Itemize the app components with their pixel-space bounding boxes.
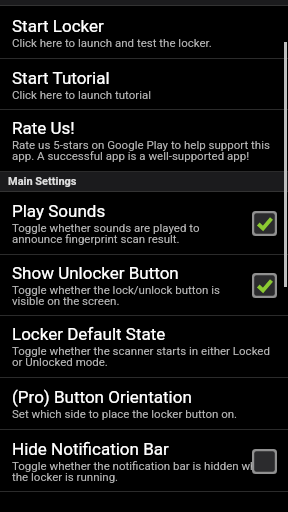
other: Toggle	[252, 211, 277, 236]
button[interactable]: (Pro) Button Orientation	[0, 378, 288, 430]
staticText: (Pro) Button Orientation	[12, 387, 192, 407]
button[interactable]: Hide Notification Bar	[0, 430, 288, 492]
staticText: Toggle whether the scanner starts in eit…	[12, 344, 270, 369]
other: Toggle	[252, 449, 277, 474]
button[interactable]: Play Sounds	[0, 192, 288, 255]
staticText: Toggle whether sounds are played to anno…	[12, 221, 200, 246]
staticText: Hide Notification Bar	[12, 439, 169, 459]
staticText: Show Unlocker Button	[12, 263, 179, 283]
button[interactable]: Start Locker	[0, 6, 288, 59]
other: Toggle	[252, 273, 277, 298]
staticText: Rate us 5-stars on Google Play to help s…	[12, 138, 270, 163]
button[interactable]: Rate Us!	[0, 110, 288, 172]
staticText: Rate Us!	[12, 118, 75, 138]
staticText: Play Sounds	[12, 201, 106, 221]
staticText: Click here to launch and test the locker…	[12, 36, 212, 49]
staticText: Start Locker	[12, 16, 104, 36]
staticText: Locker Default State	[12, 324, 166, 344]
button[interactable]: Start Tutorial	[0, 59, 288, 110]
staticText: Toggle whether the lock/unlock button is…	[12, 283, 220, 308]
button[interactable]: Locker Default State	[0, 316, 288, 378]
staticText: Set which side to place the locker butto…	[12, 407, 238, 420]
button[interactable]: Show Unlocker Button	[0, 255, 288, 316]
staticText: Click here to launch tutorial	[12, 88, 152, 101]
staticText: Start Tutorial	[12, 68, 110, 88]
staticText: Toggle whether the notification bar is h…	[12, 459, 269, 484]
staticText: Main Settings	[8, 175, 77, 188]
